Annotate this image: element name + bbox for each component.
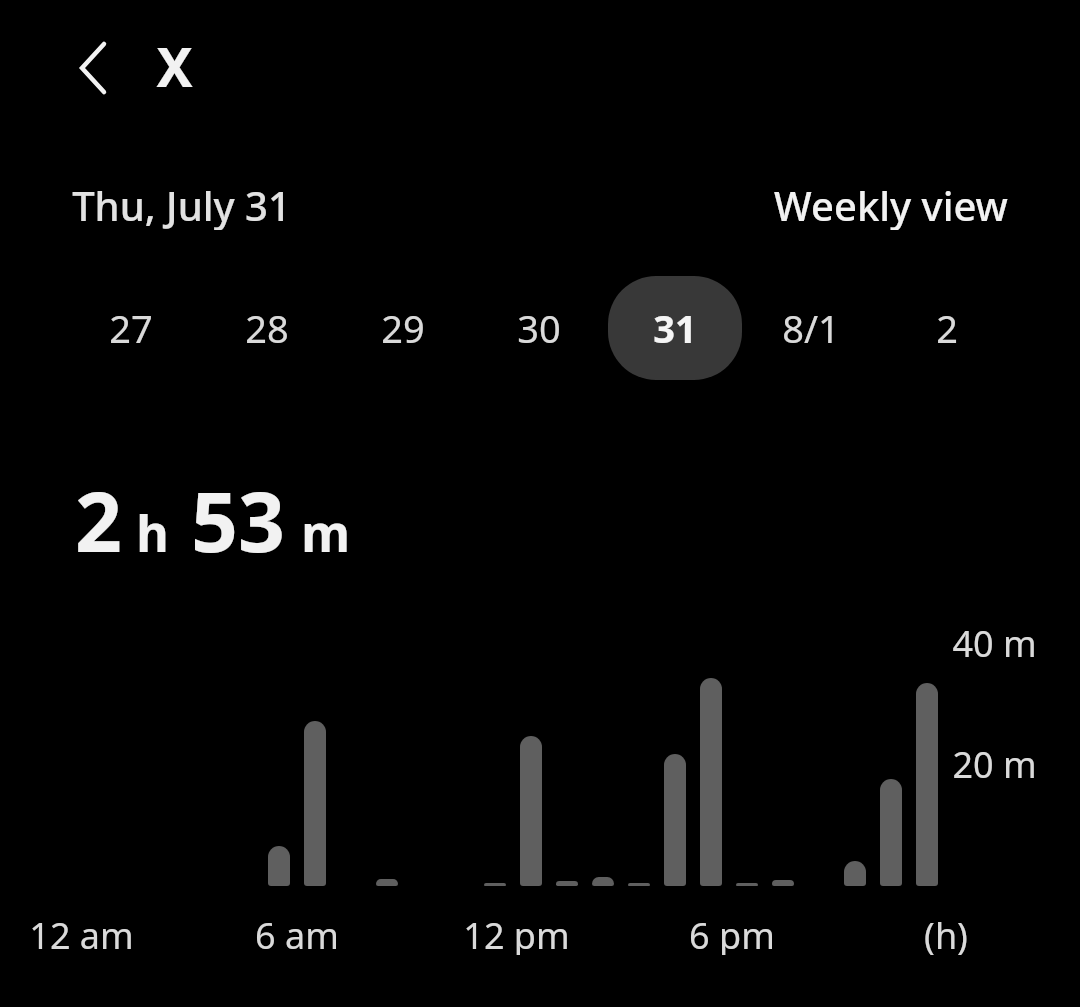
staticText: X bbox=[156, 29, 193, 91]
staticText: m bbox=[301, 499, 350, 567]
staticText: 6 pm bbox=[689, 911, 775, 955]
button[interactable]: X bbox=[146, 29, 203, 91]
button[interactable]: 28 bbox=[199, 276, 335, 380]
staticText: 20 m bbox=[952, 740, 1037, 784]
button[interactable]: 2 bbox=[879, 276, 1015, 380]
button[interactable]: 27 bbox=[63, 276, 199, 380]
staticText: 6 am bbox=[255, 911, 339, 955]
staticText: 30 bbox=[517, 302, 561, 354]
staticText: 2 bbox=[936, 302, 958, 354]
button[interactable]: 31 bbox=[607, 276, 743, 380]
staticText: 12 am bbox=[29, 911, 134, 955]
staticText: (h) bbox=[924, 911, 968, 955]
staticText: 8/1 bbox=[782, 302, 840, 354]
button[interactable]: 8/1 bbox=[743, 276, 879, 380]
staticText: 27 bbox=[109, 302, 153, 354]
staticText: Weekly view bbox=[774, 178, 1008, 230]
button[interactable] bbox=[60, 38, 120, 98]
button[interactable]: Weekly view bbox=[774, 178, 1008, 230]
staticText: 28 bbox=[245, 302, 289, 354]
staticText: 53 bbox=[191, 464, 285, 576]
staticText: 2 bbox=[75, 464, 122, 576]
staticText: 12 pm bbox=[463, 911, 570, 955]
button[interactable]: 29 bbox=[335, 276, 471, 380]
staticText: 40 m bbox=[952, 619, 1037, 663]
staticText: h bbox=[136, 499, 169, 567]
button[interactable]: 30 bbox=[471, 276, 607, 380]
staticText: 29 bbox=[381, 302, 425, 354]
staticText: 31 bbox=[653, 302, 697, 354]
staticText: Thu, July 31 bbox=[72, 178, 291, 230]
